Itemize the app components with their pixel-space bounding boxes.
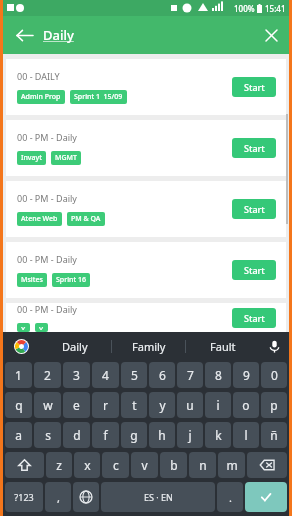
- button[interactable]: u: [177, 392, 203, 418]
- staticText: 00 - PM - Daily: [17, 192, 77, 204]
- staticText: Fault: [210, 339, 236, 354]
- button[interactable]: y: [149, 392, 175, 418]
- staticText: Daily: [43, 26, 74, 44]
- button[interactable]: p: [261, 392, 287, 418]
- staticText: PM & QA: [71, 214, 101, 224]
- button[interactable]: Start: [232, 308, 276, 328]
- staticText: Start: [244, 142, 265, 154]
- staticText: 1: [15, 367, 22, 383]
- button[interactable]: 9: [233, 362, 259, 388]
- staticText: Msites: [21, 275, 43, 285]
- staticText: 2: [44, 367, 51, 383]
- staticText: ñ: [270, 427, 278, 443]
- staticText: Start: [244, 264, 265, 276]
- staticText: d: [73, 427, 81, 443]
- staticText: i: [216, 397, 220, 413]
- button[interactable]: i: [205, 392, 231, 418]
- button[interactable]: 7: [177, 362, 203, 388]
- button[interactable]: Start: [232, 260, 276, 280]
- staticText: z: [56, 457, 62, 473]
- staticText: g: [130, 427, 138, 443]
- button[interactable]: v: [131, 452, 158, 478]
- button[interactable]: 00 - PM - Daily: [6, 242, 286, 298]
- staticText: Family: [132, 339, 166, 354]
- button[interactable]: t: [121, 392, 147, 418]
- button[interactable]: d: [63, 422, 90, 448]
- button[interactable]: a: [5, 422, 32, 448]
- button[interactable]: Daily: [39, 332, 111, 360]
- staticText: s: [45, 427, 51, 443]
- button[interactable]: c: [102, 452, 129, 478]
- button[interactable]: z: [46, 452, 72, 478]
- button[interactable]: o: [233, 392, 259, 418]
- button[interactable]: 0: [261, 362, 287, 388]
- button[interactable]: s: [34, 422, 61, 448]
- button[interactable]: r: [92, 392, 119, 418]
- button[interactable]: .: [217, 482, 243, 512]
- button[interactable]: Shift: [5, 452, 44, 478]
- button[interactable]: Start: [232, 199, 276, 219]
- button[interactable]: Family: [112, 332, 185, 360]
- staticText: .: [229, 490, 232, 505]
- button[interactable]: 00 - PM - Daily: [6, 120, 286, 176]
- button[interactable]: 8: [205, 362, 231, 388]
- staticText: 15:41: [265, 3, 286, 14]
- button[interactable]: f: [92, 422, 119, 448]
- button[interactable]: Fault: [186, 332, 259, 360]
- button[interactable]: k: [205, 422, 231, 448]
- button[interactable]: g: [121, 422, 147, 448]
- button[interactable]: Start: [232, 138, 276, 158]
- staticText: Admin Prop: [21, 92, 61, 102]
- button[interactable]: 4: [92, 362, 119, 388]
- staticText: 00 - PM - Daily: [17, 303, 77, 315]
- button[interactable]: Voice input: [259, 332, 289, 360]
- staticText: n: [199, 457, 207, 473]
- staticText: j: [188, 427, 192, 443]
- staticText: Start: [244, 312, 265, 324]
- staticText: Sprint 16: [56, 275, 86, 285]
- staticText: m: [226, 457, 238, 473]
- button[interactable]: 2: [34, 362, 61, 388]
- button[interactable]: Back: [11, 22, 37, 48]
- button[interactable]: 5: [121, 362, 147, 388]
- button[interactable]: Google: [3, 332, 39, 360]
- staticText: 8: [215, 367, 222, 383]
- button[interactable]: 00 - DAILY: [6, 59, 286, 115]
- button[interactable]: Start: [232, 77, 276, 97]
- button[interactable]: ñ: [261, 422, 287, 448]
- button[interactable]: w: [34, 392, 61, 418]
- staticText: Start: [244, 81, 265, 93]
- staticText: r: [103, 397, 108, 413]
- button[interactable]: j: [177, 422, 203, 448]
- button[interactable]: n: [189, 452, 216, 478]
- button[interactable]: Backspace: [247, 452, 287, 478]
- button[interactable]: 00 - PM - Daily: [6, 303, 286, 332]
- staticText: ,: [57, 490, 60, 505]
- button[interactable]: ?123: [5, 482, 43, 512]
- staticText: f: [103, 427, 108, 443]
- staticText: Y: [39, 325, 44, 330]
- button[interactable]: m: [218, 452, 245, 478]
- button[interactable]: b: [160, 452, 187, 478]
- button[interactable]: ES · EN: [101, 482, 215, 512]
- button[interactable]: h: [149, 422, 175, 448]
- staticText: 9: [243, 367, 250, 383]
- button[interactable]: Language: [73, 482, 99, 512]
- staticText: 7: [187, 367, 194, 383]
- staticText: e: [73, 397, 80, 413]
- button[interactable]: 6: [149, 362, 175, 388]
- button[interactable]: Daily: [43, 26, 74, 44]
- staticText: w: [43, 397, 53, 413]
- button[interactable]: 3: [63, 362, 90, 388]
- button[interactable]: 1: [5, 362, 32, 388]
- button[interactable]: Enter: [245, 482, 287, 512]
- staticText: o: [242, 397, 250, 413]
- button[interactable]: ,: [45, 482, 71, 512]
- staticText: ?123: [14, 491, 34, 503]
- button[interactable]: q: [5, 392, 32, 418]
- button[interactable]: l: [233, 422, 259, 448]
- button[interactable]: e: [63, 392, 90, 418]
- button[interactable]: 00 - PM - Daily: [6, 181, 286, 237]
- button[interactable]: Close: [259, 23, 283, 47]
- button[interactable]: x: [74, 452, 100, 478]
